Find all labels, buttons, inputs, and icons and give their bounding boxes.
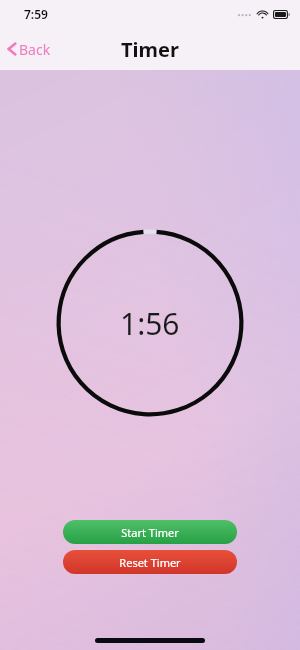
staticText: Reset Timer <box>119 555 181 570</box>
staticText: Back <box>19 40 51 59</box>
other: Back <box>6 40 18 58</box>
button[interactable]: Back <box>6 34 300 64</box>
button[interactable]: Reset Timer <box>63 550 237 574</box>
staticText: Start Timer <box>121 525 179 540</box>
button[interactable]: Start Timer <box>63 520 237 544</box>
staticText: 1:56 <box>120 303 180 344</box>
staticText: 7:59 <box>24 6 48 22</box>
staticText: Timer <box>121 36 179 63</box>
